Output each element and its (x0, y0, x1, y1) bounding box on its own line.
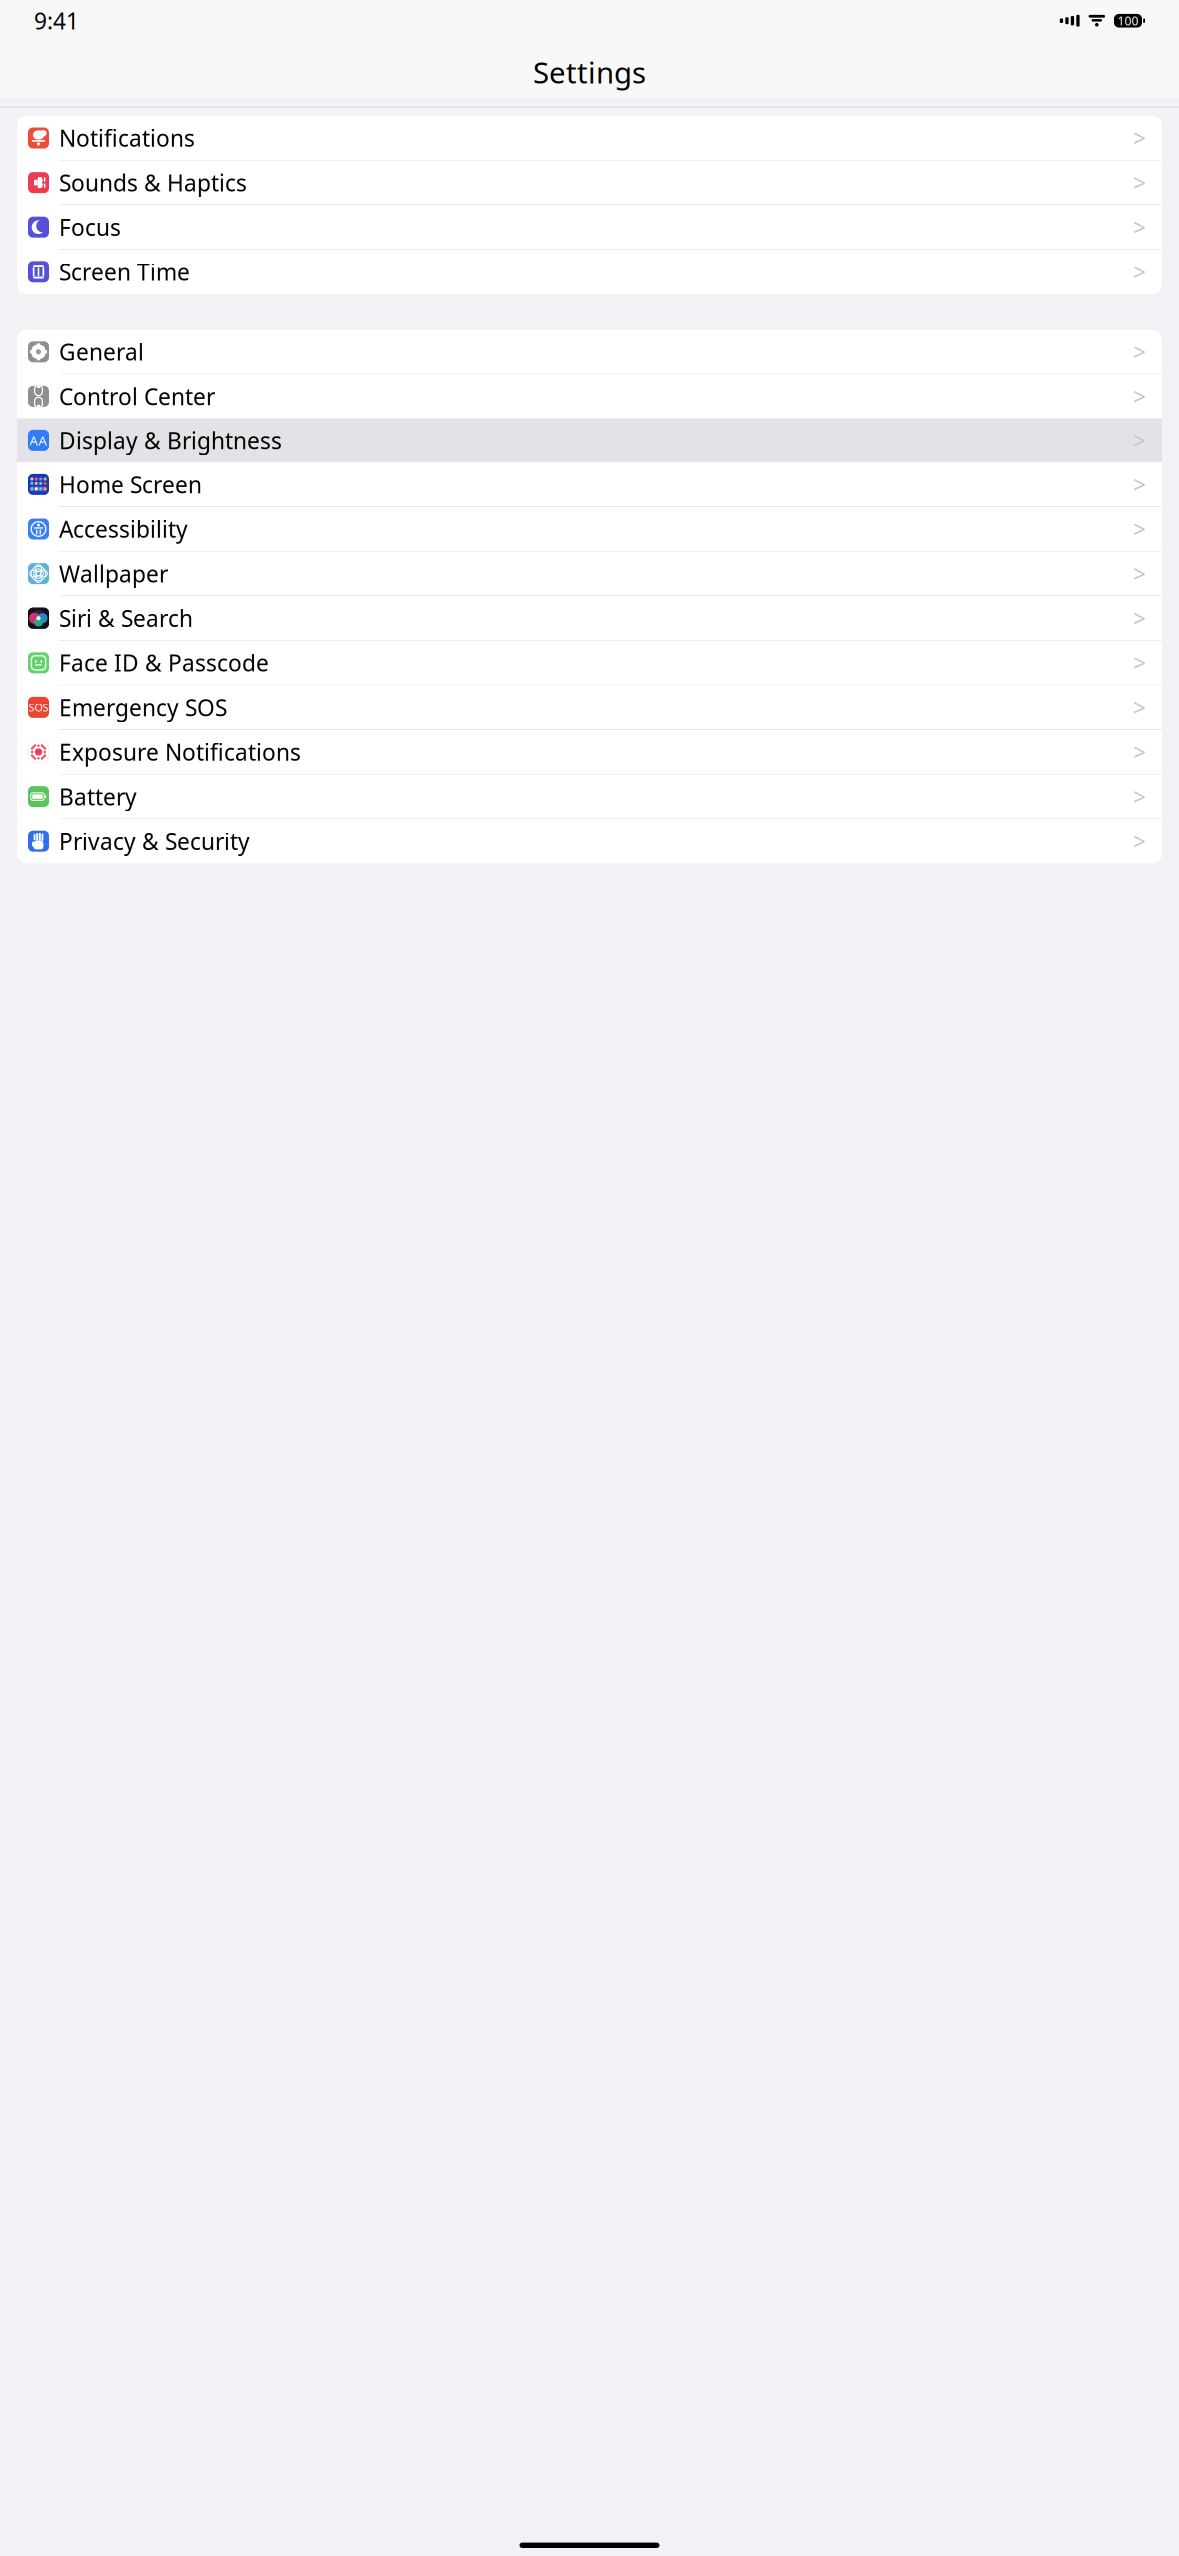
staticText: Control Center (59, 381, 215, 411)
staticText: Wallpaper (59, 558, 168, 589)
staticText: Battery (59, 781, 137, 812)
button[interactable]: Notifications (17, 116, 1162, 160)
staticText: > (1133, 558, 1146, 589)
staticText: Exposure Notifications (59, 737, 301, 767)
staticText: 100 (1117, 13, 1138, 29)
staticText: > (1133, 123, 1146, 153)
button[interactable]: General (17, 330, 1162, 374)
staticText: > (1133, 212, 1146, 242)
staticText: Home Screen (59, 469, 202, 499)
button[interactable]: Battery (17, 775, 1162, 819)
staticText: Emergency SOS (59, 692, 227, 722)
staticText: Screen Time (59, 257, 190, 287)
button[interactable]: Exposure Notifications (17, 730, 1162, 774)
button[interactable]: Privacy & Security (17, 819, 1162, 863)
staticText: > (1133, 603, 1146, 633)
staticText: > (1133, 167, 1146, 198)
button[interactable]: AA (17, 418, 1162, 462)
button[interactable]: Face ID & Passcode (17, 641, 1162, 685)
staticText: 9:41 (34, 6, 79, 36)
button[interactable]: Siri & Search (17, 596, 1162, 640)
staticText: Display & Brightness (59, 425, 282, 455)
button[interactable]: Home Screen (17, 462, 1162, 506)
button[interactable]: Wallpaper (17, 552, 1162, 596)
staticText: > (1133, 257, 1146, 287)
staticText: > (1133, 381, 1146, 411)
staticText: Siri & Search (59, 603, 193, 633)
staticText: General (59, 337, 144, 367)
staticText: > (1133, 425, 1146, 455)
staticText: Face ID & Passcode (59, 648, 269, 678)
staticText: Sounds & Haptics (59, 167, 247, 198)
staticText: SOS (28, 700, 48, 714)
staticText: Focus (59, 212, 121, 242)
button[interactable]: Screen Time (17, 250, 1162, 294)
staticText: Settings (533, 53, 646, 92)
staticText: > (1133, 648, 1146, 678)
staticText: AA (29, 431, 47, 449)
staticText: > (1133, 826, 1146, 856)
button[interactable]: Focus (17, 205, 1162, 249)
button[interactable]: Sounds & Haptics (17, 161, 1162, 205)
button[interactable]: Control Center (17, 374, 1162, 418)
staticText: Notifications (59, 123, 195, 153)
button[interactable]: Accessibility (17, 507, 1162, 551)
staticText: > (1133, 781, 1146, 812)
staticText: > (1133, 469, 1146, 499)
staticText: > (1133, 337, 1146, 367)
staticText: > (1133, 514, 1146, 544)
staticText: > (1133, 692, 1146, 722)
button[interactable]: SOS (17, 685, 1162, 729)
staticText: Accessibility (59, 514, 188, 544)
staticText: > (1133, 737, 1146, 767)
staticText: Privacy & Security (59, 826, 250, 856)
